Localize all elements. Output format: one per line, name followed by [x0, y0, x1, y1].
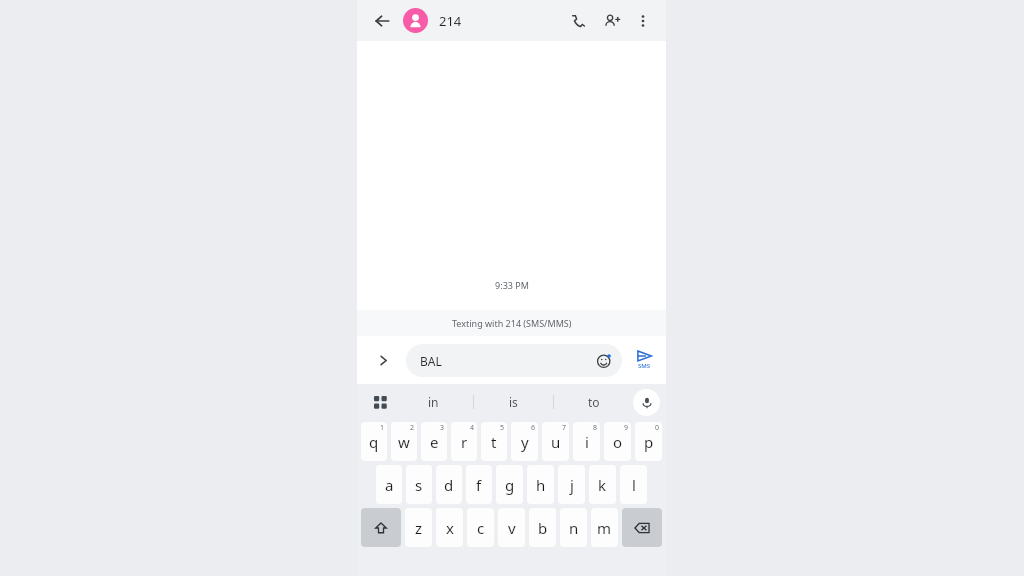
button[interactable]: to: [554, 384, 633, 420]
staticText: b: [538, 518, 548, 538]
staticText: f: [476, 475, 482, 495]
staticText: o: [613, 432, 623, 452]
button[interactable]: in: [393, 384, 473, 420]
button[interactable]: Contact avatar: [403, 8, 428, 33]
staticText: 1: [380, 423, 385, 433]
button[interactable]: z: [405, 508, 432, 547]
button[interactable]: r: [451, 422, 477, 461]
staticText: e: [430, 432, 439, 452]
staticText: a: [385, 475, 394, 495]
button[interactable]: k: [589, 465, 616, 504]
button[interactable]: Emoji: [592, 349, 616, 373]
staticText: 4: [470, 423, 475, 433]
staticText: j: [570, 475, 574, 495]
button[interactable]: w: [391, 422, 417, 461]
staticText: q: [369, 432, 379, 452]
staticText: h: [536, 475, 546, 495]
button[interactable]: Back: [370, 9, 394, 33]
staticText: x: [446, 518, 454, 538]
staticText: p: [644, 432, 654, 452]
staticText: k: [598, 475, 607, 495]
button[interactable]: x: [436, 508, 463, 547]
button[interactable]: m: [591, 508, 618, 547]
staticText: 0: [655, 423, 660, 433]
staticText: in: [428, 394, 439, 410]
staticText: d: [444, 475, 454, 495]
button[interactable]: j: [558, 465, 585, 504]
button[interactable]: l: [620, 465, 647, 504]
button[interactable]: h: [527, 465, 554, 504]
button[interactable]: y: [511, 422, 538, 461]
staticText: 5: [500, 423, 505, 433]
staticText: g: [505, 475, 515, 495]
staticText: 214: [439, 12, 462, 30]
button[interactable]: Shift: [361, 508, 401, 547]
button[interactable]: Voice input: [633, 389, 660, 416]
button[interactable]: u: [542, 422, 569, 461]
button[interactable]: Send SMS: [628, 344, 660, 376]
staticText: t: [491, 432, 497, 452]
button[interactable]: n: [560, 508, 587, 547]
button[interactable]: Keyboard options: [367, 389, 393, 415]
button[interactable]: Add person: [597, 6, 627, 36]
button[interactable]: is: [474, 384, 553, 420]
button[interactable]: v: [498, 508, 525, 547]
staticText: r: [461, 432, 468, 452]
staticText: Texting with 214 (SMS/MMS): [452, 317, 572, 329]
staticText: 6: [531, 423, 536, 433]
staticText: 2: [410, 423, 415, 433]
staticText: s: [415, 475, 423, 495]
staticText: w: [398, 432, 410, 452]
staticText: to: [588, 394, 600, 410]
staticText: z: [415, 518, 423, 538]
button[interactable]: o: [604, 422, 631, 461]
button[interactable]: c: [467, 508, 494, 547]
button[interactable]: d: [436, 465, 462, 504]
button[interactable]: a: [376, 465, 402, 504]
staticText: c: [477, 518, 485, 538]
button[interactable]: f: [466, 465, 492, 504]
button[interactable]: More options: [629, 7, 657, 35]
staticText: m: [597, 518, 612, 538]
button[interactable]: Call: [562, 6, 592, 36]
button[interactable]: i: [573, 422, 600, 461]
staticText: v: [508, 518, 516, 538]
button[interactable]: BAL: [406, 344, 622, 377]
staticText: SMS: [638, 362, 651, 370]
button[interactable]: q: [361, 422, 387, 461]
staticText: 3: [440, 423, 445, 433]
button[interactable]: 214: [439, 12, 462, 30]
staticText: 7: [562, 423, 567, 433]
button[interactable]: e: [421, 422, 447, 461]
staticText: y: [521, 432, 529, 452]
staticText: i: [585, 432, 589, 452]
button[interactable]: Backspace: [622, 508, 662, 547]
staticText: BAL: [420, 353, 442, 369]
button[interactable]: b: [529, 508, 556, 547]
button[interactable]: Expand: [370, 347, 396, 373]
staticText: l: [632, 475, 636, 495]
staticText: n: [569, 518, 579, 538]
staticText: 8: [593, 423, 598, 433]
staticText: 9: [624, 423, 629, 433]
staticText: is: [509, 394, 518, 410]
button[interactable]: g: [496, 465, 523, 504]
button[interactable]: t: [481, 422, 507, 461]
button[interactable]: s: [406, 465, 432, 504]
staticText: 9:33 PM: [495, 279, 529, 291]
button[interactable]: p: [635, 422, 662, 461]
staticText: u: [551, 432, 561, 452]
